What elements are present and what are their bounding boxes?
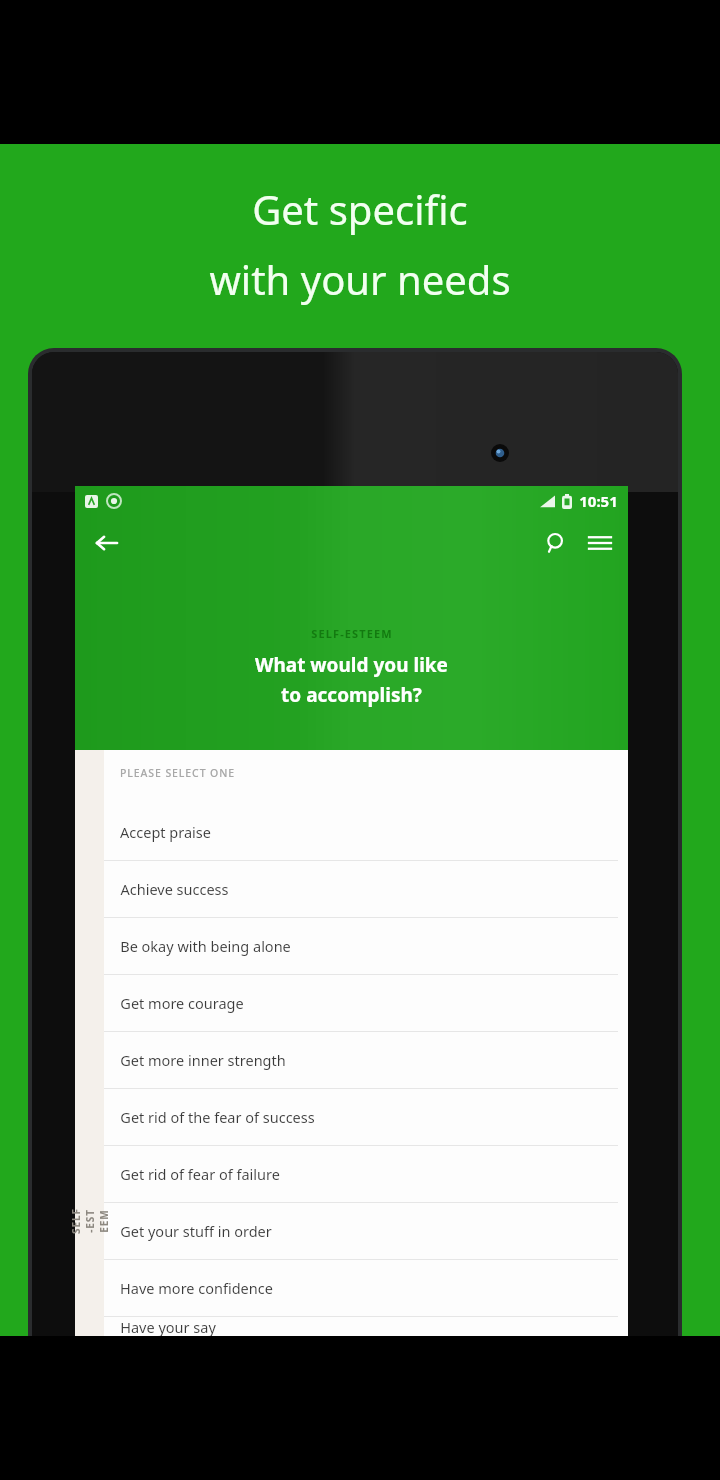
button[interactable]: Back xyxy=(85,521,129,565)
button[interactable]: Get your stuff in order xyxy=(104,1203,628,1260)
staticText: Get your stuff in order xyxy=(120,1221,272,1241)
button[interactable]: Be okay with being alone xyxy=(104,918,628,975)
staticText: What would you like xyxy=(255,652,448,678)
staticText: Get rid of fear of failure xyxy=(120,1164,280,1184)
staticText: SELF-ESTEEM xyxy=(311,626,393,641)
staticText: SELF-ESTEEM xyxy=(68,1206,110,1235)
staticText: Get rid of the fear of success xyxy=(120,1107,315,1127)
staticText: 10:51 xyxy=(579,491,618,511)
staticText: Accept praise xyxy=(120,822,211,842)
staticText: Achieve success xyxy=(120,879,229,899)
staticText: Get more courage xyxy=(120,993,244,1013)
button[interactable]: Search xyxy=(534,521,578,565)
button[interactable]: Menu xyxy=(578,521,622,565)
button[interactable]: Accept praise xyxy=(104,804,628,861)
staticText: Get specific xyxy=(252,182,468,236)
staticText: with your needs xyxy=(209,252,511,306)
button[interactable]: Get more courage xyxy=(104,975,628,1032)
button[interactable]: Get rid of fear of failure xyxy=(104,1146,628,1203)
staticText: Get more inner strength xyxy=(120,1050,286,1070)
button[interactable]: Have your say xyxy=(104,1317,628,1336)
button[interactable]: Get rid of the fear of success xyxy=(104,1089,628,1146)
button[interactable]: Have more confidence xyxy=(104,1260,628,1317)
staticText: Have your say xyxy=(120,1317,216,1336)
staticText: Be okay with being alone xyxy=(120,936,291,956)
staticText: PLEASE SELECT ONE xyxy=(120,766,235,780)
button[interactable]: Achieve success xyxy=(104,861,628,918)
staticText: to accomplish? xyxy=(281,682,422,708)
staticText: Have more confidence xyxy=(120,1278,273,1298)
button[interactable]: Get more inner strength xyxy=(104,1032,628,1089)
